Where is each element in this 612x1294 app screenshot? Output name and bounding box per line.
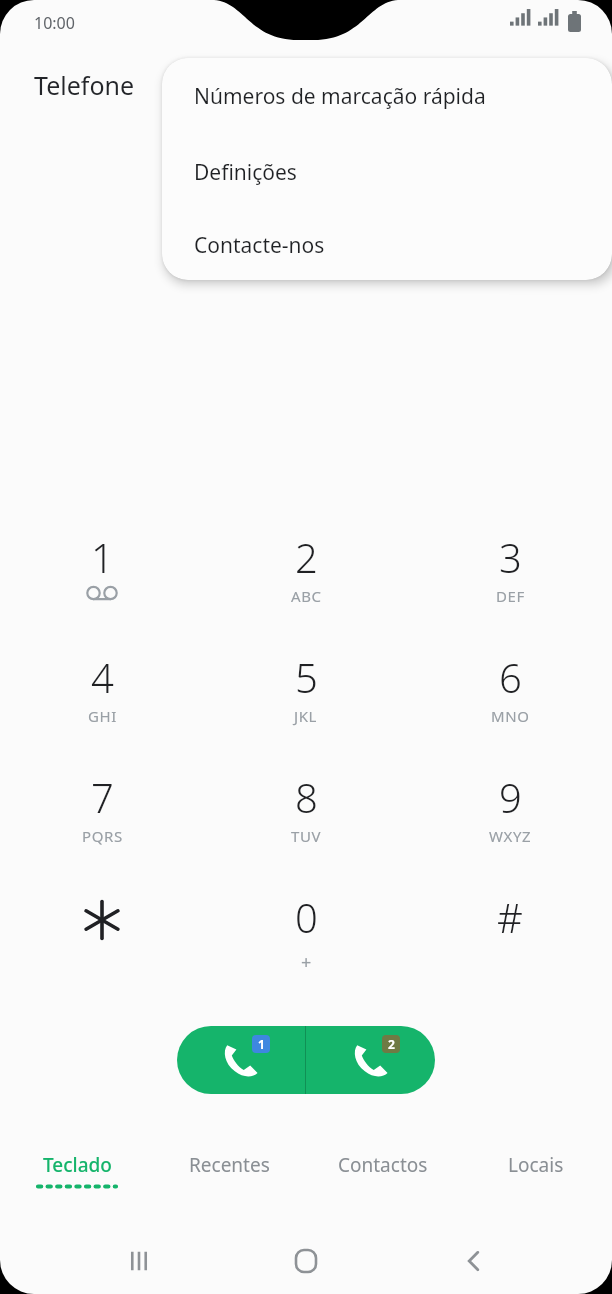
button[interactable]: 8 <box>204 752 408 872</box>
staticText: 4 <box>91 650 114 704</box>
staticText: Recentes <box>189 1152 270 1178</box>
staticText: 10:00 <box>34 12 75 34</box>
staticText: Locais <box>508 1152 564 1178</box>
staticText: Contactos <box>338 1152 428 1178</box>
staticText: ABC <box>291 586 322 606</box>
staticText: + <box>301 950 312 975</box>
staticText: MNO <box>491 706 530 726</box>
staticText: Números de marcação rápida <box>194 82 486 111</box>
button[interactable]: Definições <box>162 134 612 210</box>
staticText: 5 <box>295 650 318 704</box>
button[interactable]: 3 <box>408 512 612 632</box>
button[interactable]: Contacte-nos <box>162 210 612 280</box>
button[interactable]: 0 <box>204 872 408 992</box>
button[interactable]: Recentes <box>153 1152 306 1214</box>
button[interactable]: 9 <box>408 752 612 872</box>
staticText: 0 <box>295 890 318 944</box>
button[interactable]: Contactos <box>306 1152 459 1214</box>
button[interactable]: Teclado <box>0 1152 153 1214</box>
staticText: WXYZ <box>489 826 532 846</box>
staticText: PQRS <box>82 826 123 846</box>
staticText: 2 <box>295 530 318 584</box>
button[interactable]: Recents <box>110 1232 168 1290</box>
staticText: TUV <box>291 826 322 846</box>
button[interactable]: 2 <box>204 512 408 632</box>
staticText: GHI <box>88 706 117 726</box>
button[interactable]: 4 <box>0 632 204 752</box>
staticText: 7 <box>91 770 114 824</box>
staticText: Contacte-nos <box>194 231 325 260</box>
staticText: 1 <box>91 530 114 584</box>
button[interactable]: Call with SIM 1 <box>177 1026 305 1094</box>
staticText: 8 <box>295 770 318 824</box>
staticText: # <box>497 890 523 944</box>
button[interactable]: 1 <box>0 512 204 632</box>
button[interactable]: # <box>408 872 612 992</box>
button[interactable]: Locais <box>459 1152 612 1214</box>
button[interactable] <box>0 872 204 992</box>
staticText: JKL <box>294 706 318 726</box>
staticText: 3 <box>499 530 522 584</box>
button[interactable]: Home <box>277 1232 335 1290</box>
staticText: Telefone <box>34 68 135 102</box>
button[interactable]: 5 <box>204 632 408 752</box>
button[interactable]: 6 <box>408 632 612 752</box>
staticText: Teclado <box>43 1152 112 1178</box>
staticText: Definições <box>194 158 297 187</box>
button[interactable]: Back <box>445 1232 503 1290</box>
staticText: 6 <box>499 650 522 704</box>
staticText: 9 <box>499 770 522 824</box>
staticText: 2 <box>388 1036 395 1052</box>
button[interactable]: Call with SIM 2 <box>306 1026 435 1094</box>
staticText: 1 <box>258 1036 265 1052</box>
button[interactable]: 7 <box>0 752 204 872</box>
staticText: DEF <box>496 586 525 606</box>
button[interactable]: Números de marcação rápida <box>162 58 612 134</box>
